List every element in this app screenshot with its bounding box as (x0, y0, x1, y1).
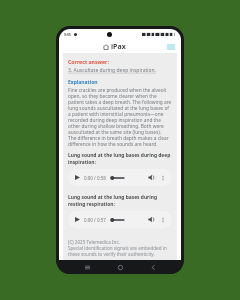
staticText: Correct answer: (68, 58, 109, 65)
button[interactable]: Back (148, 262, 158, 272)
staticText: (C) 2025 Telemedica Inc. Special identif… (68, 239, 172, 257)
button[interactable]: Recent apps (82, 262, 92, 272)
button[interactable]: More options (159, 174, 167, 182)
button[interactable]: Play (68, 211, 172, 228)
button[interactable]: Volume (147, 215, 156, 224)
staticText: 3. Auscultate during deep inspiration. (68, 67, 157, 74)
button[interactable]: iPax (103, 42, 126, 52)
staticText: Lung sound at the lung bases during rest… (68, 194, 172, 207)
staticText: iPax (111, 42, 126, 52)
staticText: 0:00 / 0:58 (84, 175, 106, 181)
staticText: Lung sound at the lung bases during deep… (68, 152, 172, 165)
button[interactable]: Volume (147, 173, 156, 182)
button[interactable]: Play (73, 215, 82, 224)
staticText: 9:05 (64, 32, 71, 37)
button[interactable]: Play (68, 169, 172, 186)
staticText: The difference in breath depth makes a c… (68, 135, 172, 147)
button[interactable]: Menu (166, 42, 176, 52)
button[interactable]: Home (115, 262, 125, 272)
button[interactable]: Play (73, 173, 82, 182)
button[interactable]: More options (159, 216, 167, 224)
staticText: Explanation (68, 79, 98, 86)
staticText: 0:00 / 0:57 (84, 217, 106, 223)
staticText: Fine crackles are produced when the alve… (68, 87, 172, 135)
